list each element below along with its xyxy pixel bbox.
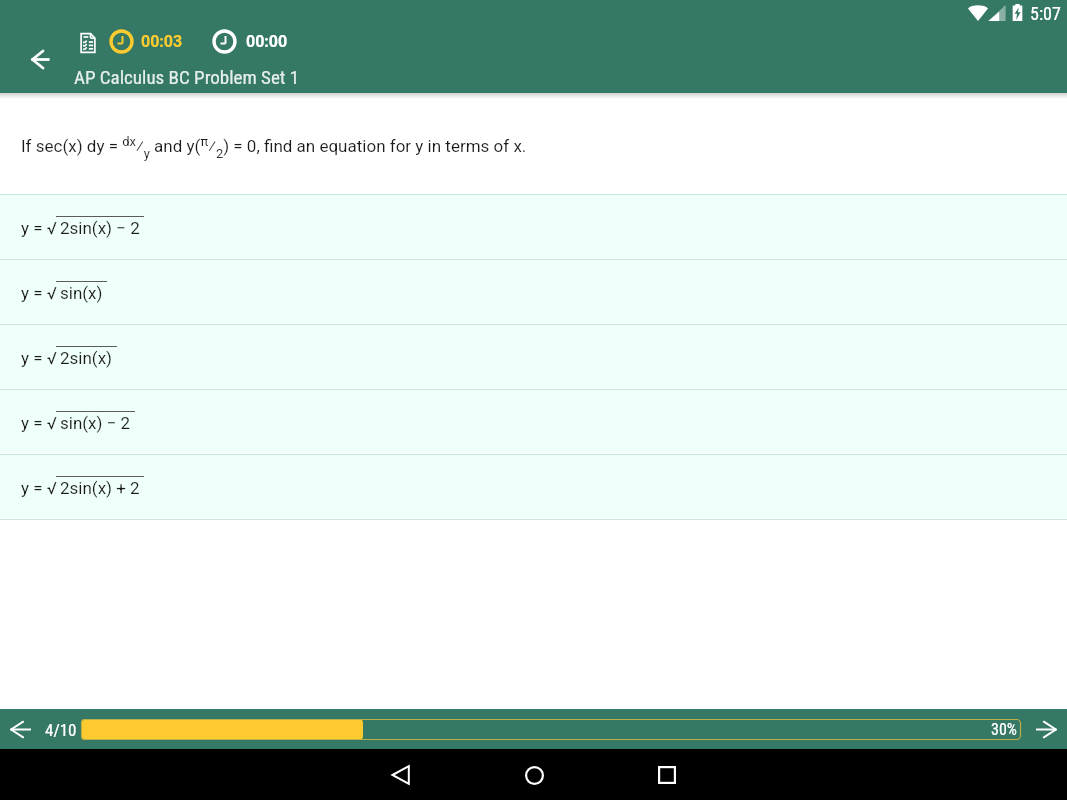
staticText: 2sin(x) + 2	[60, 478, 140, 498]
staticText: 00:00	[246, 32, 288, 51]
button[interactable]: y = √	[0, 195, 1067, 258]
button[interactable]: y = √	[0, 325, 1067, 388]
staticText: y = √	[21, 348, 57, 368]
button[interactable]: y = √	[0, 390, 1067, 453]
staticText: y = √	[21, 283, 57, 303]
staticText: y = √	[21, 478, 57, 498]
button[interactable]: Back	[26, 44, 56, 74]
button[interactable]: Home	[510, 751, 558, 799]
staticText: sin(x)	[60, 283, 103, 303]
staticText: 4/10	[45, 720, 77, 740]
staticText: AP Calculus BC Problem Set 1	[74, 66, 300, 88]
button[interactable]: Next question	[1029, 715, 1062, 743]
button[interactable]: y = √	[0, 455, 1067, 518]
staticText: 30%	[991, 720, 1017, 739]
button[interactable]: Back	[376, 751, 424, 799]
staticText: y = √	[21, 218, 57, 238]
staticText: 2sin(x) − 2	[60, 218, 140, 238]
staticText: y = √	[21, 413, 57, 433]
staticText: 00:03	[141, 32, 183, 51]
staticText: If sec(x) dy = dx⁄y and y(π⁄2) = 0, find…	[21, 134, 527, 161]
button[interactable]: Previous question	[4, 715, 37, 743]
button[interactable]: Recent apps	[643, 751, 691, 799]
staticText: 2sin(x)	[60, 348, 113, 368]
staticText: sin(x) − 2	[60, 413, 131, 433]
staticText: 5:07	[1030, 3, 1061, 24]
button[interactable]: y = √	[0, 260, 1067, 323]
